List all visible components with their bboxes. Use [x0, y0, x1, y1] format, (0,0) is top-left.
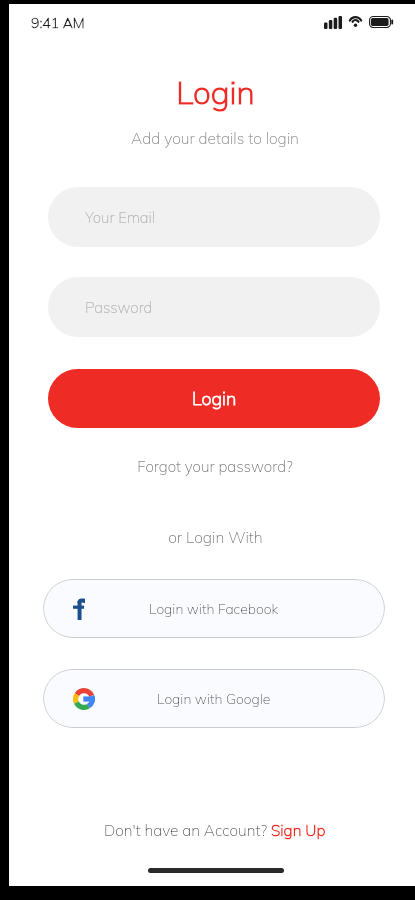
button[interactable]: Don't have an Account? Sign Up — [12, 817, 415, 843]
button[interactable]: Password — [48, 277, 380, 337]
staticText: Login with Facebook — [149, 600, 279, 618]
staticText: Forgot your password? — [137, 457, 293, 476]
staticText: 9:41 AM — [31, 14, 85, 32]
other: Login with Google — [73, 688, 95, 710]
staticText: or Login With — [168, 527, 263, 547]
staticText: Login with Google — [157, 690, 271, 708]
staticText: Login — [176, 72, 255, 112]
button[interactable]: Login with Facebook — [43, 579, 385, 638]
other: Login with Facebook — [73, 598, 85, 620]
staticText: Your Email — [85, 208, 156, 227]
button[interactable]: Login with Google — [43, 669, 385, 728]
staticText: Add your details to login — [131, 128, 299, 147]
button[interactable]: Login — [48, 369, 380, 428]
staticText: Login — [192, 387, 237, 410]
button[interactable]: Your Email — [48, 187, 380, 247]
staticText: Don't have an Account? Sign Up — [104, 821, 326, 840]
staticText: Password — [85, 298, 153, 317]
